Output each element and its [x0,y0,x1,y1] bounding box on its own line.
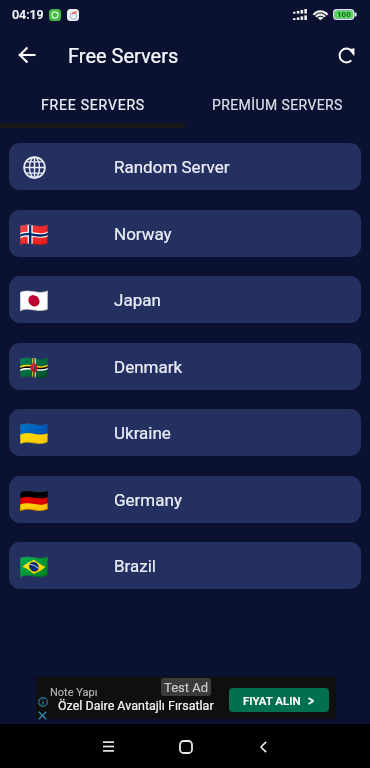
button[interactable]: 🇺🇦 [9,409,361,456]
button[interactable]: Random Server [9,143,361,190]
button[interactable]: 🇩🇲 [9,343,361,390]
button[interactable]: 🇧🇷 [9,542,361,589]
staticText: 🇺🇦 [19,420,49,446]
staticText: 100 [337,10,351,19]
staticText: Free Servers [68,44,179,67]
staticText: Germany [114,490,182,510]
button[interactable]: FIYAT ALIN [229,688,329,712]
staticText: Japan [114,290,161,310]
staticText: 🇧🇷 [19,553,49,579]
staticText: FREE SERVERS [41,97,145,113]
staticText: Random Server [114,157,230,177]
button[interactable]: 🇯🇵 [9,276,361,323]
staticText: PREMİUM SERVERS [212,97,343,113]
button[interactable]: FREE SERVERS [0,82,185,123]
staticText: 🇯🇵 [19,287,49,313]
staticText: Test Ad [164,680,209,695]
button[interactable]: 🇳🇴 [9,210,361,257]
staticText: 🇩🇲 [19,354,49,380]
staticText: Özel Daire Avantajlı Fırsatlar [58,698,214,713]
staticText: Note Yapı [50,686,98,699]
staticText: Norway [114,224,172,244]
button[interactable]: Home [165,726,206,767]
staticText: 🇳🇴 [19,221,49,247]
staticText: 🇩🇪 [19,487,49,513]
staticText: FIYAT ALIN [243,694,301,707]
staticText: 04:19 [12,7,44,22]
button[interactable]: 🇩🇪 [9,476,361,523]
staticText: Ukraine [114,423,171,443]
staticText: Denmark [114,357,183,377]
button[interactable]: PREMİUM SERVERS [185,82,370,123]
staticText: Brazil [114,556,156,576]
button[interactable]: Back [8,36,46,74]
button[interactable]: Back [243,726,284,767]
button[interactable]: Refresh [327,36,365,74]
button[interactable]: Recent apps [88,726,129,767]
